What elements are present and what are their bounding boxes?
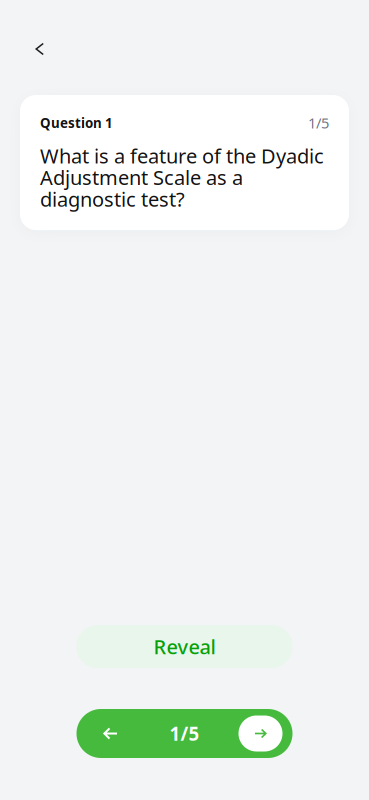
button[interactable]: Back	[25, 34, 55, 64]
button[interactable]: Previous question	[90, 713, 130, 753]
staticText: 1/5	[169, 721, 199, 746]
staticText: 1/5	[308, 113, 329, 132]
staticText: What is a feature of the Dyadic Adjustme…	[40, 142, 324, 212]
button[interactable]: Reveal	[76, 625, 292, 668]
staticText: Question 1	[40, 114, 113, 132]
staticText: Reveal	[153, 633, 215, 660]
button[interactable]: Next question	[238, 715, 282, 751]
